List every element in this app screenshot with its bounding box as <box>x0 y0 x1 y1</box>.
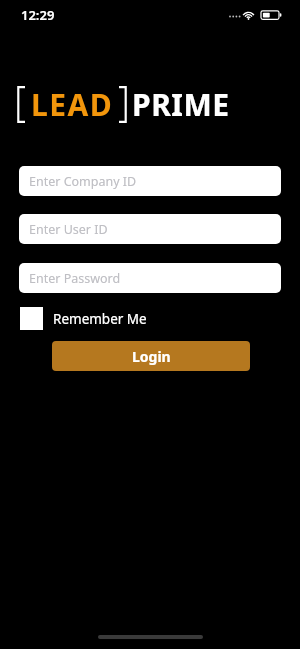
staticText: 12:29 <box>21 6 55 24</box>
staticText: Enter User ID <box>29 221 108 238</box>
button[interactable]: Login <box>52 341 250 371</box>
button[interactable]: Enter User ID <box>19 214 281 244</box>
staticText: Login <box>132 347 171 366</box>
staticText: Enter Company ID <box>29 173 137 190</box>
staticText: LEAD <box>31 84 114 125</box>
staticText: Remember Me <box>53 310 147 328</box>
button[interactable]: Remember Me <box>20 307 147 330</box>
staticText: PRIME <box>132 84 230 125</box>
button[interactable]: Enter Company ID <box>19 166 281 196</box>
staticText: Enter Password <box>29 270 121 287</box>
button[interactable]: Enter Password <box>19 263 281 293</box>
